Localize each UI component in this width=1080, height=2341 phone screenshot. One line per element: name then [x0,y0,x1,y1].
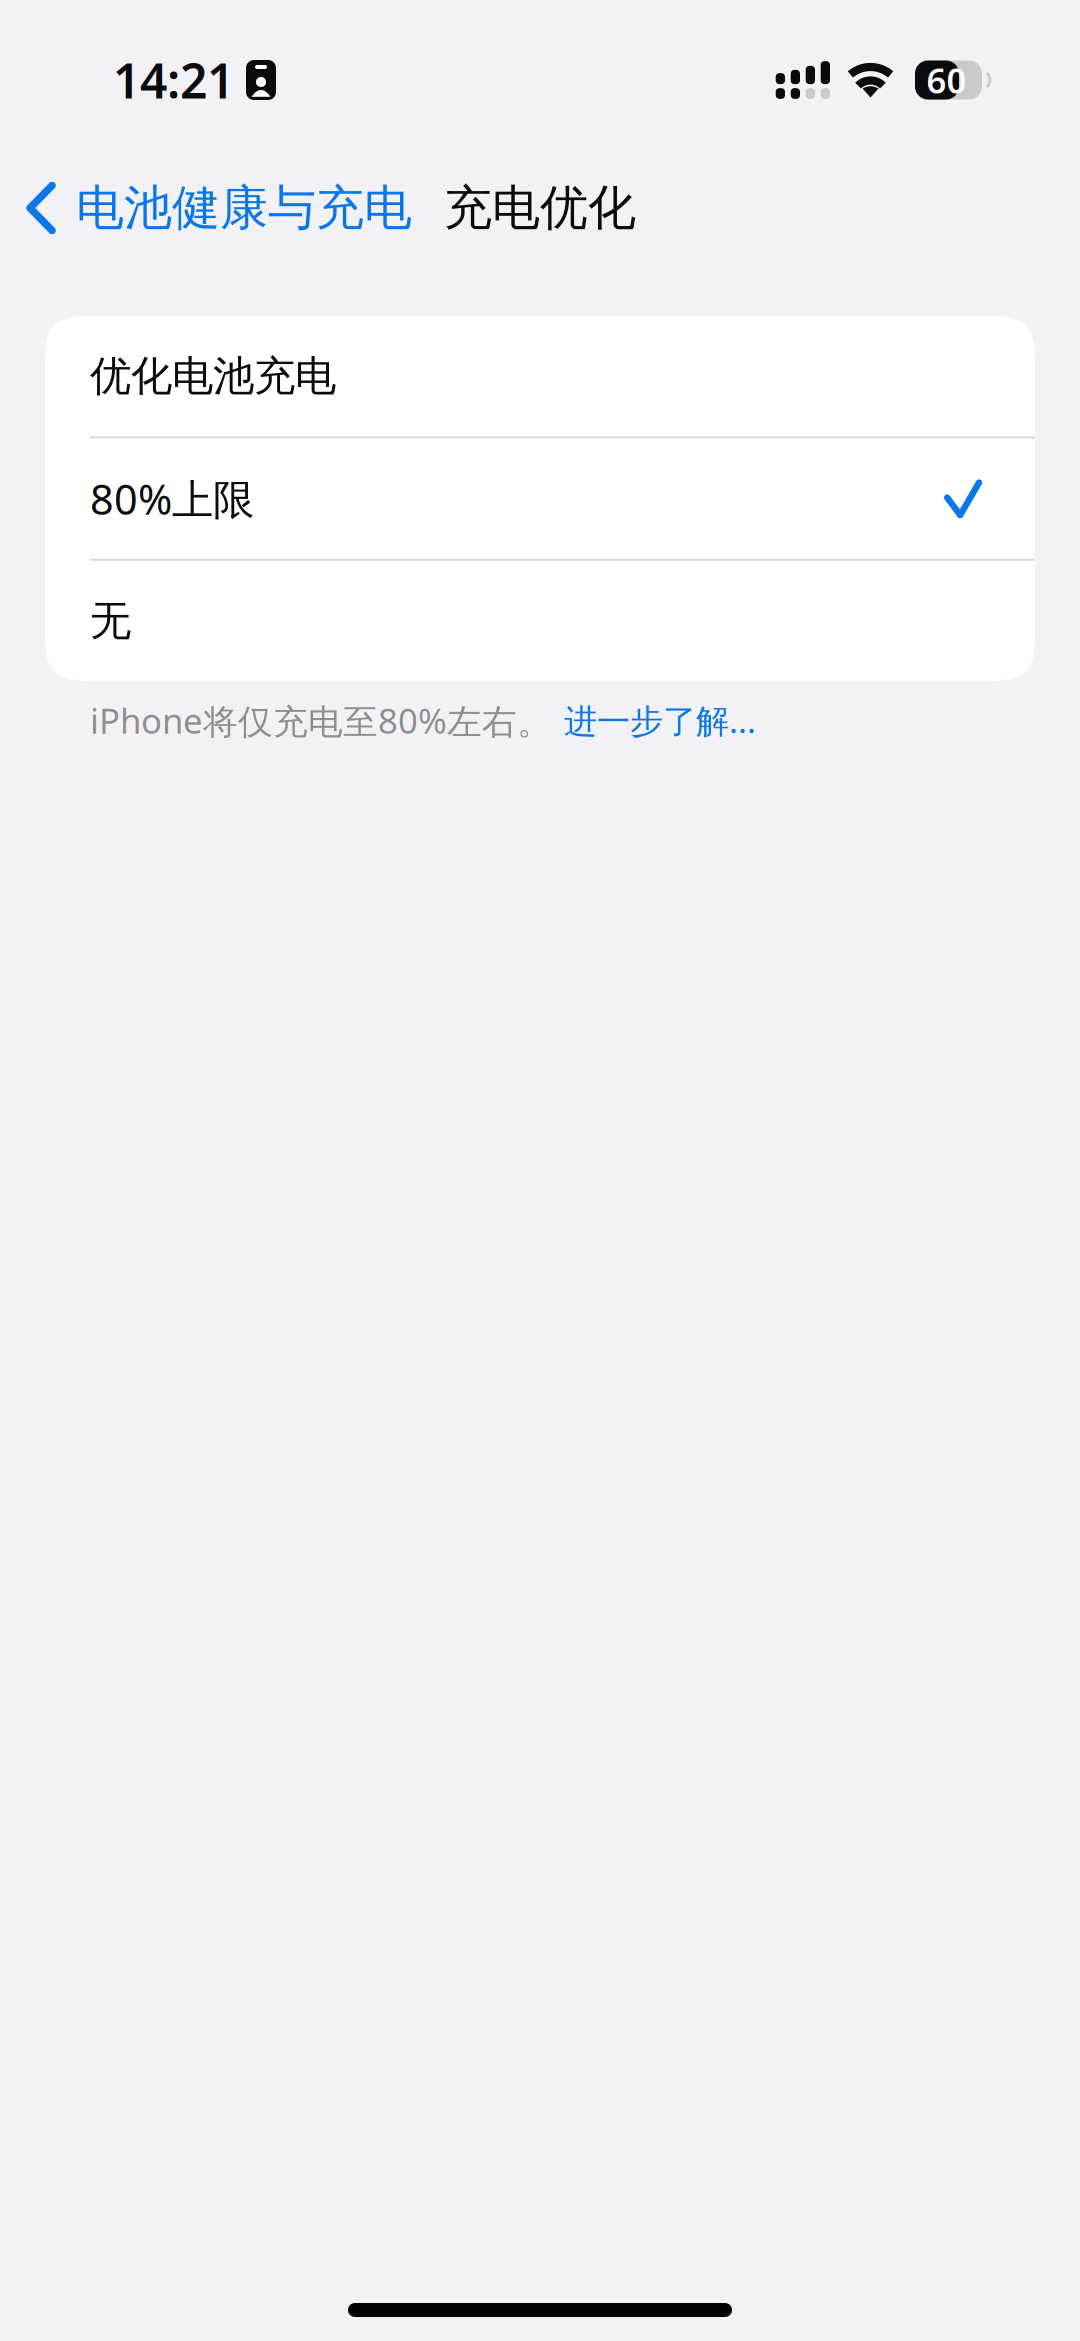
staticText: iPhone将仅充电至80%左右。 [90,697,552,743]
staticText: 电池健康与充电 [76,178,412,237]
staticText: 60 [926,57,966,103]
staticText: 14:21 [113,48,234,112]
staticText: 优化电池充电 [90,351,336,402]
button[interactable]: 80%上限 [45,438,1035,559]
button[interactable]: 进一步了解... [552,692,756,748]
staticText: 80%上限 [90,471,254,526]
staticText: 充电优化 [444,178,636,237]
button[interactable]: 返回 电池健康与充电 [0,160,420,256]
staticText: 无 [90,596,131,646]
button[interactable]: 优化电池充电 [45,316,1035,436]
button[interactable]: 无 [45,561,1035,681]
staticText: 进一步了解... [564,698,756,742]
